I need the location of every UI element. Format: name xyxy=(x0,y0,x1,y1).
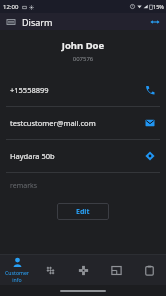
button[interactable]: Customer info xyxy=(0,255,34,285)
staticText: Disarm xyxy=(22,16,53,28)
button[interactable]: Call xyxy=(142,82,158,98)
button[interactable]: Toggle width xyxy=(148,15,162,29)
button[interactable]: Map xyxy=(142,148,158,164)
button[interactable]: Edit xyxy=(57,203,109,220)
staticText: Edit xyxy=(76,207,90,217)
staticText: 15% xyxy=(153,3,164,10)
button[interactable]: testcustomer@mail.com xyxy=(0,107,166,139)
staticText: remarks xyxy=(10,181,38,191)
staticText: +15558899 xyxy=(10,85,142,95)
button[interactable]: +15558899 xyxy=(0,74,166,106)
staticText: testcustomer@mail.com xyxy=(10,118,142,128)
button[interactable]: Haydara 50b xyxy=(0,140,166,172)
button[interactable]: Devices xyxy=(34,255,67,285)
staticText: Haydara 50b xyxy=(10,151,142,161)
button[interactable]: Notes xyxy=(133,255,166,285)
staticText: 12:00 xyxy=(3,3,19,11)
button[interactable]: Menu xyxy=(5,16,17,28)
button[interactable]: Zones xyxy=(67,255,100,285)
staticText: 007576 xyxy=(0,55,166,63)
staticText: John Doe xyxy=(0,39,166,52)
button[interactable]: Plan xyxy=(100,255,133,285)
button[interactable]: Email xyxy=(142,115,158,131)
staticText: Customer info xyxy=(0,269,34,283)
